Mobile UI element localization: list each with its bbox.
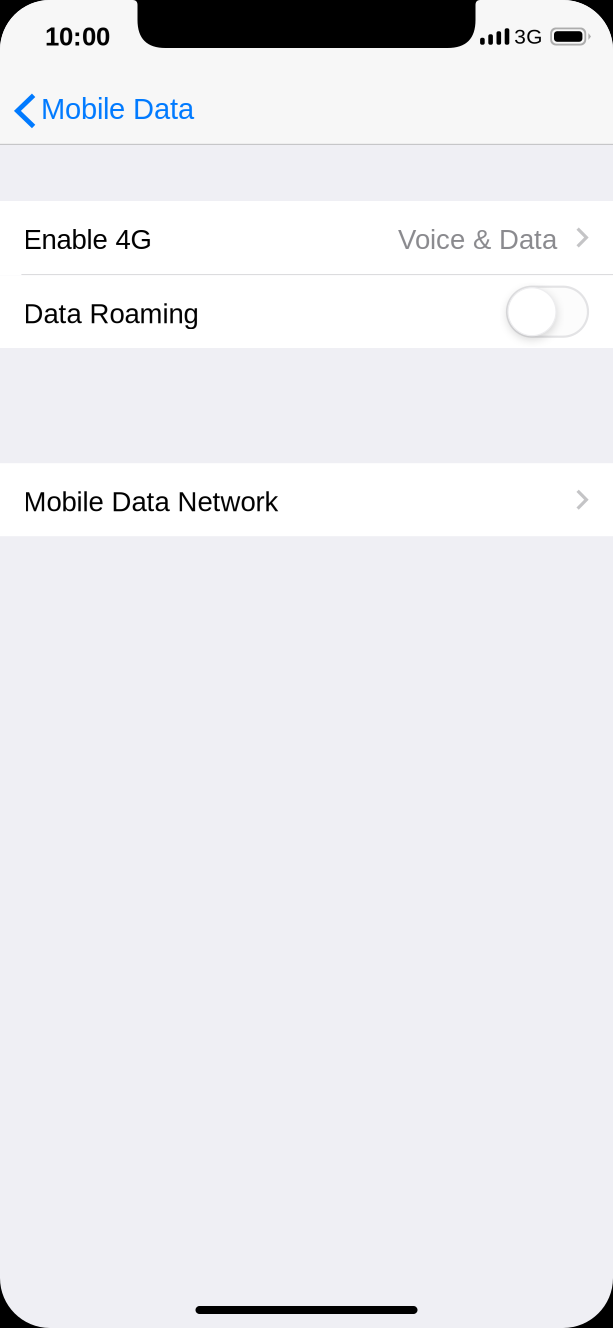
staticText: Data Roaming [23,298,198,329]
staticText: 3G [514,25,542,48]
button[interactable]: Data Roaming [0,275,613,348]
button[interactable]: Mobile Data Network [0,463,613,536]
button[interactable]: Enable 4G [0,201,613,274]
staticText: Voice & Data [398,224,557,255]
staticText: Mobile Data Network [23,486,278,517]
button[interactable]: Mobile Data [0,78,206,144]
staticText: Enable 4G [23,224,151,255]
staticText: 10:00 [45,22,110,51]
staticText: Mobile Data [41,93,194,125]
